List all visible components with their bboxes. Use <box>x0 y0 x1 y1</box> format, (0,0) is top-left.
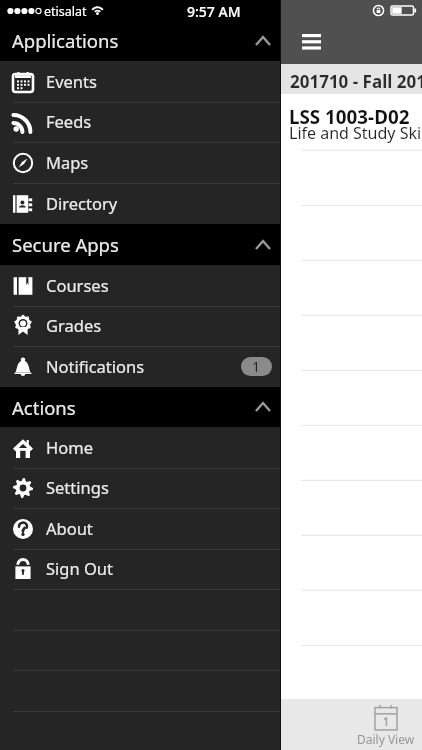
staticText: Secure Apps <box>12 232 119 257</box>
staticText: Sign Out <box>46 557 113 579</box>
staticText: Feeds <box>46 110 92 132</box>
button[interactable]: Collapse Secure Apps <box>241 224 281 265</box>
button[interactable]: Collapse Applications <box>241 20 281 61</box>
staticText: Actions <box>12 395 76 420</box>
staticText: Life and Study Skills <box>289 122 422 144</box>
staticText: Maps <box>46 151 89 173</box>
button[interactable]: Directory <box>0 183 281 224</box>
button[interactable]: Daily View <box>350 699 422 750</box>
staticText: About <box>46 517 93 539</box>
staticText: 9:57 AM <box>187 2 241 21</box>
button[interactable]: Collapse Actions <box>241 387 281 427</box>
staticText: Daily View <box>357 731 415 747</box>
button[interactable]: Settings <box>0 468 281 508</box>
button[interactable]: About <box>0 508 281 549</box>
button[interactable]: Open navigation menu <box>295 28 327 54</box>
button[interactable]: Home <box>0 427 281 468</box>
staticText: Notifications <box>46 355 145 377</box>
button[interactable]: Maps <box>0 142 281 183</box>
staticText: Events <box>46 70 97 92</box>
button[interactable]: Feeds <box>0 102 281 142</box>
staticText: Directory <box>46 192 118 214</box>
staticText: Home <box>46 436 93 458</box>
button[interactable]: Events <box>0 61 281 102</box>
button[interactable]: Sign Out <box>0 549 281 589</box>
button[interactable]: Grades <box>0 306 281 346</box>
button[interactable]: Notifications <box>0 346 281 387</box>
staticText: Applications <box>12 28 119 53</box>
staticText: Courses <box>46 274 109 296</box>
staticText: etisalat <box>44 3 87 20</box>
staticText: LSS 1003-D02 <box>289 104 410 130</box>
staticText: Settings <box>46 476 109 498</box>
staticText: 1 <box>252 357 261 376</box>
staticText: Grades <box>46 314 102 336</box>
staticText: 201710 - Fall 2017 <box>290 70 422 93</box>
button[interactable]: Courses <box>0 265 281 306</box>
